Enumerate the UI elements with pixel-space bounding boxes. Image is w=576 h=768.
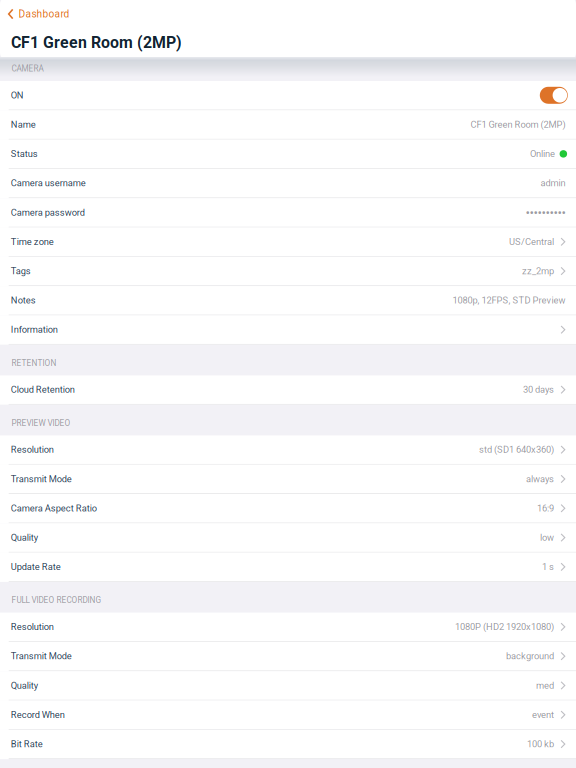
button[interactable]: Dashboard	[0, 0, 576, 28]
staticText: Name	[11, 119, 36, 130]
staticText: Resolution	[11, 621, 54, 632]
staticText: RETENTION	[11, 358, 56, 368]
button[interactable]: Camera username	[0, 169, 576, 198]
staticText: Camera password	[11, 207, 85, 218]
staticText: 1 s	[542, 561, 554, 572]
button[interactable]: Time zone	[0, 227, 576, 257]
button[interactable]: Bit Rate	[0, 730, 576, 759]
button[interactable]: Status	[0, 140, 576, 169]
staticText: 30 days	[523, 384, 554, 395]
staticText: Camera username	[11, 178, 86, 189]
staticText: CF1 Green Room (2MP)	[470, 119, 565, 130]
staticText: zz_2mp	[522, 266, 554, 276]
staticText: Status	[11, 148, 38, 159]
staticText: 1080p, 12FPS, STD Preview	[452, 295, 565, 306]
staticText: Information	[11, 324, 58, 335]
staticText: ON	[11, 90, 24, 101]
button[interactable]: Quality	[0, 671, 576, 700]
button[interactable]: Name	[0, 110, 576, 140]
staticText: CF1 Green Room (2MP)	[11, 33, 182, 52]
staticText: always	[526, 473, 554, 484]
button[interactable]: Camera on	[540, 87, 568, 104]
button[interactable]: Tags	[0, 257, 576, 286]
button[interactable]: Resolution	[0, 435, 576, 465]
staticText: FULL VIDEO RECORDING	[11, 595, 101, 605]
staticText: US/Central	[509, 236, 554, 247]
button[interactable]: ON	[0, 81, 576, 110]
staticText: Transmit Mode	[11, 651, 72, 662]
button[interactable]: Information	[0, 315, 576, 345]
staticText: admin	[540, 178, 565, 189]
button[interactable]: Resolution	[0, 613, 576, 642]
staticText: background	[506, 651, 554, 662]
staticText: 100 kb	[527, 739, 554, 749]
staticText: CAMERA	[11, 64, 43, 73]
button[interactable]: Transmit Mode	[0, 465, 576, 494]
staticText: 16:9	[537, 503, 554, 514]
staticText: Notes	[11, 295, 36, 306]
staticText: Cloud Retention	[11, 384, 75, 395]
button[interactable]: Update Rate	[0, 553, 576, 582]
staticText: Tags	[11, 266, 31, 276]
button[interactable]: Record When	[0, 700, 576, 730]
staticText: event	[532, 709, 554, 720]
staticText: Quality	[11, 680, 38, 691]
button[interactable]: Camera password	[0, 198, 576, 227]
staticText: Record When	[11, 709, 65, 720]
staticText: 1080P (HD2 1920x1080)	[455, 621, 554, 632]
button[interactable]: Quality	[0, 523, 576, 553]
staticText: ••••••••••	[525, 205, 565, 220]
staticText: low	[540, 532, 554, 543]
staticText: med	[536, 680, 554, 691]
staticText: PREVIEW VIDEO	[11, 418, 70, 428]
staticText: Bit Rate	[11, 739, 43, 749]
staticText: Dashboard	[18, 8, 69, 20]
staticText: Resolution	[11, 444, 54, 455]
staticText: Quality	[11, 532, 38, 543]
staticText: Update Rate	[11, 561, 61, 572]
button[interactable]: Camera Aspect Ratio	[0, 494, 576, 523]
staticText: Transmit Mode	[11, 473, 72, 484]
button[interactable]: Cloud Retention	[0, 375, 576, 405]
staticText: Online	[530, 148, 555, 159]
staticText: std (SD1 640x360)	[479, 444, 554, 455]
staticText: Time zone	[11, 236, 54, 247]
button[interactable]: Notes	[0, 286, 576, 315]
button[interactable]: Transmit Mode	[0, 642, 576, 671]
staticText: Camera Aspect Ratio	[11, 503, 97, 514]
